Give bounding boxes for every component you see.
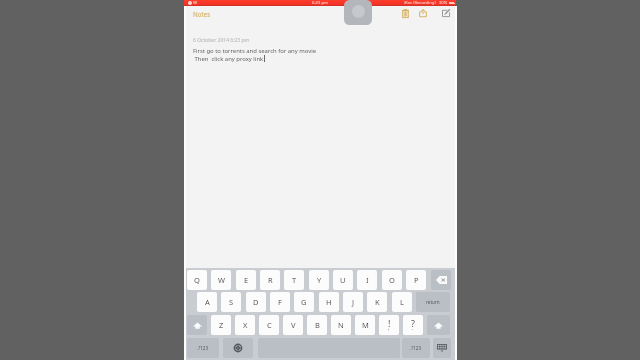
staticText: return bbox=[426, 299, 440, 305]
button[interactable]: Shift bbox=[427, 315, 450, 335]
staticText: U bbox=[340, 275, 346, 285]
staticText: Z bbox=[219, 320, 224, 330]
button[interactable]: E bbox=[236, 270, 256, 290]
staticText: O bbox=[389, 275, 395, 285]
button[interactable]: U bbox=[333, 270, 353, 290]
staticText: Y bbox=[317, 275, 322, 285]
button[interactable]: O bbox=[382, 270, 402, 290]
staticText: X bbox=[243, 320, 248, 330]
button[interactable]: return bbox=[416, 292, 450, 312]
staticText: D bbox=[253, 297, 259, 307]
staticText: iRec (Recording) 30% bbox=[404, 0, 448, 6]
button[interactable]: Notes bbox=[193, 10, 211, 18]
staticText: T bbox=[292, 275, 297, 285]
button[interactable]: T bbox=[284, 270, 304, 290]
button[interactable]: R bbox=[260, 270, 280, 290]
button[interactable]: ? bbox=[403, 315, 423, 335]
button[interactable]: S bbox=[221, 292, 241, 312]
button[interactable]: D bbox=[246, 292, 266, 312]
staticText: C bbox=[267, 320, 272, 330]
staticText: N bbox=[338, 320, 344, 330]
button[interactable]: C bbox=[259, 315, 279, 335]
staticText: J bbox=[352, 297, 355, 307]
staticText: G bbox=[301, 297, 307, 307]
button[interactable]: B bbox=[307, 315, 327, 335]
staticText: K bbox=[375, 297, 380, 307]
button[interactable]: Hide keyboard bbox=[433, 338, 451, 358]
staticText: .?123 bbox=[197, 345, 209, 351]
staticText: V bbox=[291, 320, 296, 330]
button[interactable]: G bbox=[294, 292, 314, 312]
staticText: .?123 bbox=[410, 345, 422, 351]
button[interactable]: .?123 bbox=[187, 338, 219, 358]
button[interactable]: A bbox=[197, 292, 217, 312]
button[interactable]: Backspace bbox=[431, 270, 451, 290]
button[interactable]: K bbox=[367, 292, 387, 312]
button[interactable]: ! bbox=[379, 315, 399, 335]
button[interactable]: Y bbox=[309, 270, 329, 290]
staticText: Then click any proxy link bbox=[193, 55, 264, 63]
button[interactable]: Z bbox=[211, 315, 231, 335]
button[interactable]: W bbox=[211, 270, 231, 290]
staticText: P bbox=[414, 275, 419, 285]
button[interactable]: Delete note bbox=[397, 5, 413, 21]
staticText: A bbox=[205, 297, 210, 307]
button[interactable]: Shift bbox=[187, 315, 207, 335]
staticText: B bbox=[315, 320, 320, 330]
staticText: First go to torrents and search for any … bbox=[193, 47, 316, 55]
button[interactable]: I bbox=[357, 270, 377, 290]
staticText: . bbox=[412, 324, 414, 332]
staticText: W bbox=[218, 275, 225, 285]
button[interactable]: M bbox=[355, 315, 375, 335]
staticText: R bbox=[268, 275, 273, 285]
staticText: 6:23 pm bbox=[312, 0, 328, 6]
button[interactable]: Share bbox=[415, 5, 431, 21]
staticText: 6 October 2014 6:23 pm bbox=[193, 37, 250, 44]
button[interactable]: X bbox=[235, 315, 255, 335]
button[interactable]: J bbox=[343, 292, 363, 312]
button[interactable]: F bbox=[270, 292, 290, 312]
button[interactable]: V bbox=[283, 315, 303, 335]
staticText: , bbox=[388, 324, 390, 332]
staticText: F bbox=[278, 297, 282, 307]
button[interactable]: New note bbox=[438, 5, 454, 21]
button[interactable]: .?123 bbox=[402, 338, 430, 358]
button[interactable]: N bbox=[331, 315, 351, 335]
staticText: L bbox=[400, 297, 404, 307]
button[interactable]: L bbox=[392, 292, 412, 312]
staticText: E bbox=[244, 275, 249, 285]
staticText: ? bbox=[411, 317, 415, 329]
staticText: Q bbox=[194, 275, 200, 285]
staticText: H bbox=[326, 297, 332, 307]
staticText: ! bbox=[388, 317, 391, 329]
button[interactable]: H bbox=[319, 292, 339, 312]
button[interactable]: Switch keyboard bbox=[223, 338, 253, 358]
staticText: S bbox=[229, 297, 234, 307]
staticText: I bbox=[366, 275, 369, 285]
button[interactable]: Q bbox=[187, 270, 207, 290]
staticText: M bbox=[362, 320, 369, 330]
button[interactable]: P bbox=[406, 270, 426, 290]
